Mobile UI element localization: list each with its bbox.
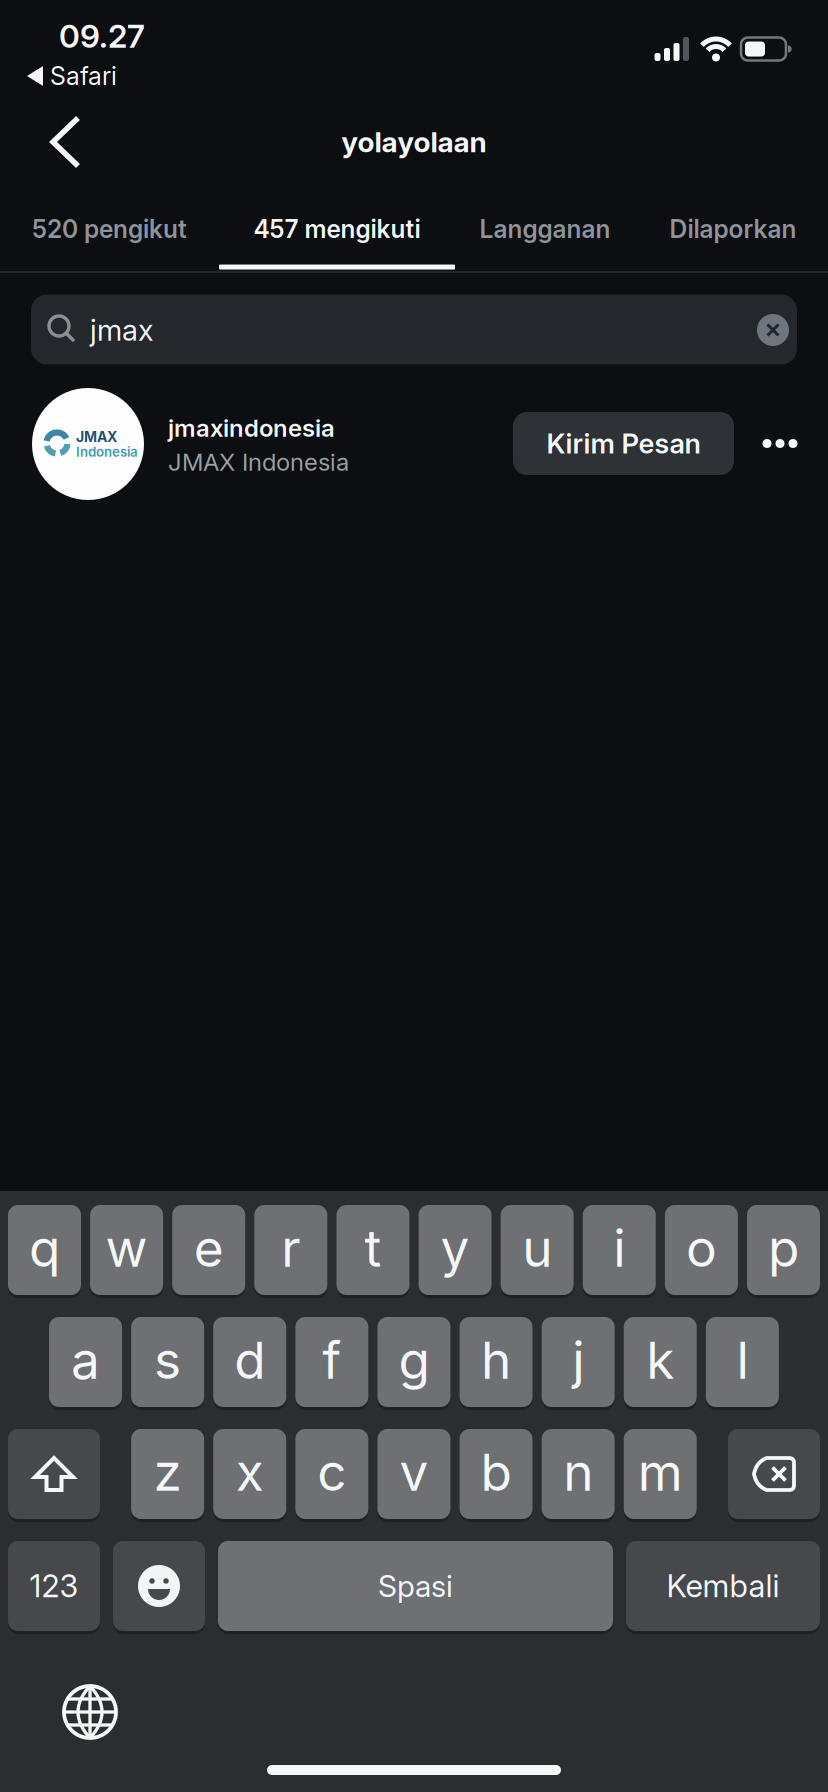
button[interactable]: q [8,1205,81,1298]
button[interactable]: Next keyboard [55,1677,125,1747]
staticText: w [106,1217,148,1279]
staticText: Spasi [378,1568,453,1604]
button[interactable]: Clear search [757,314,789,346]
button[interactable]: h [460,1317,533,1410]
staticText: jmax [90,312,153,348]
button[interactable]: d [213,1317,286,1410]
button[interactable]: 123 [8,1541,100,1634]
button[interactable]: Delete [728,1429,820,1522]
button[interactable]: b [459,1429,532,1522]
button[interactable]: u [501,1205,574,1298]
button[interactable]: 520 pengikut [0,191,219,267]
button[interactable]: t [336,1205,409,1298]
staticText: r [281,1217,300,1279]
button[interactable]: r [254,1205,327,1298]
staticText: JMAX Indonesia [168,447,349,476]
button[interactable]: y [419,1205,492,1298]
staticText: 123 [29,1567,78,1604]
staticText: f [322,1329,341,1391]
staticText: l [736,1329,748,1391]
staticText: x [236,1441,264,1503]
staticText: s [154,1329,181,1391]
staticText: c [317,1441,346,1503]
staticText: Indonesia [76,444,138,460]
staticText: a [71,1329,100,1391]
staticText: q [29,1217,60,1279]
button[interactable]: w [90,1205,163,1298]
staticText: yolayolaan [341,125,486,159]
button[interactable]: n [542,1429,615,1522]
staticText: n [563,1441,593,1503]
staticText: JMAX [76,428,117,445]
button[interactable]: j [542,1317,615,1410]
staticText: d [234,1329,265,1391]
staticText: m [638,1441,683,1503]
staticText: u [522,1217,552,1279]
staticText: Safari [50,61,117,91]
button[interactable]: e [172,1205,245,1298]
button[interactable]: Dilaporkan [635,191,828,267]
button[interactable]: x [213,1429,286,1522]
staticText: i [613,1217,625,1279]
button[interactable]: z [131,1429,204,1522]
button[interactable]: s [131,1317,204,1410]
staticText: t [364,1217,381,1279]
button[interactable]: 457 mengikuti [219,191,455,267]
staticText: 09.27 [59,17,145,55]
button[interactable]: Emoji [113,1541,205,1634]
button[interactable]: v [377,1429,450,1522]
staticText: e [194,1217,224,1279]
staticText: y [441,1217,470,1279]
button[interactable]: Shift [8,1429,100,1522]
staticText: o [686,1217,717,1279]
button[interactable]: Back [51,116,83,168]
button[interactable]: p [747,1205,820,1298]
staticText: jmaxindonesia [168,413,335,443]
button[interactable]: o [665,1205,738,1298]
staticText: 520 pengikut [32,214,187,244]
staticText: p [768,1217,799,1279]
staticText: g [398,1329,429,1391]
staticText: Langganan [479,214,610,244]
staticText: z [154,1441,182,1503]
button[interactable]: Kembali [626,1541,820,1634]
button[interactable]: g [377,1317,450,1410]
button[interactable]: Kirim Pesan [513,412,734,475]
button[interactable]: JMAX [0,387,500,501]
staticText: h [481,1329,511,1391]
button[interactable]: a [49,1317,122,1410]
button[interactable]: c [295,1429,368,1522]
button[interactable]: i [583,1205,656,1298]
button[interactable]: f [295,1317,368,1410]
button[interactable]: More options [761,437,798,450]
staticText: v [399,1441,428,1503]
staticText: k [646,1329,674,1391]
staticText: j [572,1329,584,1391]
button[interactable]: Langganan [447,191,643,267]
button[interactable]: l [706,1317,779,1410]
staticText: b [480,1441,511,1503]
button[interactable]: Spasi [218,1541,613,1634]
button[interactable]: m [624,1429,697,1522]
staticText: 457 mengikuti [253,214,420,244]
staticText: Kirim Pesan [546,427,700,460]
button[interactable]: k [624,1317,697,1410]
staticText: Dilaporkan [669,214,796,244]
button[interactable]: Safari [27,59,167,93]
staticText: Kembali [666,1567,779,1605]
